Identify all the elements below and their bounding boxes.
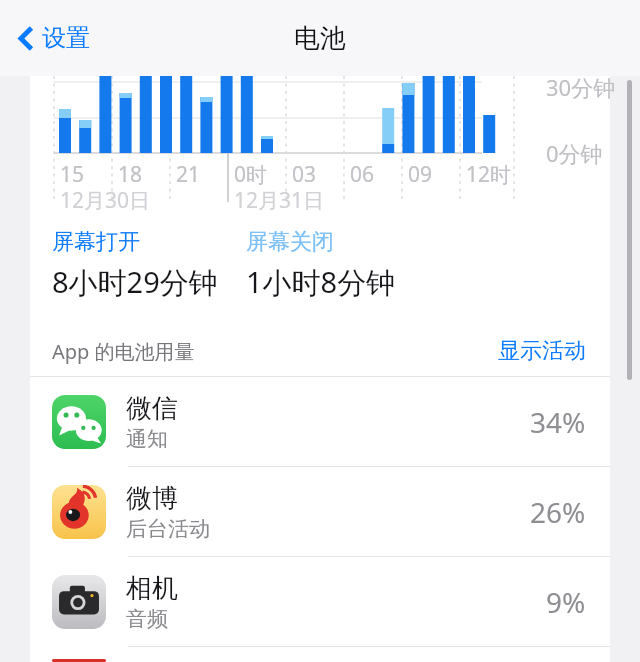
other: Back to Settings bbox=[18, 25, 34, 52]
staticText: 微信 bbox=[126, 392, 178, 425]
staticText: 09 bbox=[408, 160, 433, 189]
staticText: 屏幕关闭 bbox=[246, 228, 334, 256]
staticText: 音频 bbox=[126, 606, 168, 632]
staticText: 12月30日 bbox=[60, 186, 151, 215]
staticText: 26% bbox=[530, 493, 586, 531]
staticText: 1小时8分钟 bbox=[246, 262, 396, 302]
staticText: 21 bbox=[176, 160, 201, 189]
staticText: App 的电池用量 bbox=[52, 338, 195, 365]
staticText: 06 bbox=[350, 160, 375, 189]
staticText: 0时 bbox=[234, 160, 268, 189]
staticText: 12时 bbox=[466, 160, 512, 189]
staticText: 34% bbox=[530, 403, 586, 441]
staticText: 屏幕打开 bbox=[52, 228, 140, 256]
button[interactable] bbox=[30, 647, 610, 662]
staticText: 0分钟 bbox=[546, 138, 603, 168]
staticText: 微博 bbox=[126, 482, 178, 515]
staticText: 显示活动 bbox=[498, 337, 586, 365]
button[interactable]: 相机 bbox=[30, 557, 610, 647]
button[interactable]: Back to Settings bbox=[12, 15, 96, 61]
staticText: 30分钟 bbox=[546, 72, 616, 102]
staticText: 18 bbox=[118, 160, 143, 189]
staticText: 通知 bbox=[126, 426, 168, 452]
staticText: 相机 bbox=[126, 572, 178, 605]
staticText: 03 bbox=[292, 160, 317, 189]
staticText: 15 bbox=[60, 160, 85, 189]
button[interactable]: 微信 bbox=[30, 377, 610, 467]
button[interactable]: 微博 bbox=[30, 467, 610, 557]
staticText: 12月31日 bbox=[234, 186, 325, 215]
button[interactable]: 显示活动 bbox=[496, 333, 588, 369]
staticText: 9% bbox=[546, 583, 586, 621]
staticText: 后台活动 bbox=[126, 516, 210, 542]
staticText: 8小时29分钟 bbox=[52, 262, 218, 302]
staticText: 设置 bbox=[42, 23, 90, 53]
staticText: 电池 bbox=[294, 22, 346, 55]
